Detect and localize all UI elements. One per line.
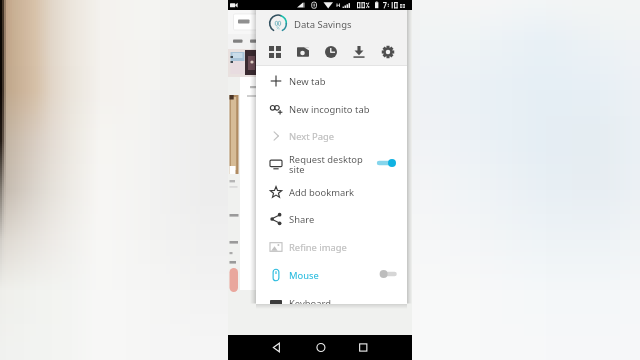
staticText: Data Savings [294, 18, 352, 31]
button[interactable]: Photos [293, 42, 313, 62]
button[interactable]: Next Page [256, 122, 407, 150]
button[interactable]: Apps [265, 42, 285, 62]
button[interactable]: Data Savings [256, 10, 407, 38]
button[interactable]: Settings [378, 42, 398, 62]
button[interactable]: Keyboard [256, 289, 407, 304]
button[interactable]: Refine image [256, 233, 407, 261]
button[interactable]: History [321, 42, 341, 62]
button[interactable]: Downloads [349, 42, 369, 62]
button[interactable]: Add bookmark [256, 178, 407, 206]
button[interactable]: New tab [256, 67, 407, 95]
staticText: Mouse [289, 269, 319, 282]
button[interactable]: New incognito tab [256, 95, 407, 123]
staticText: Next Page [289, 130, 335, 143]
button[interactable]: Mouse [256, 261, 407, 289]
staticText: Add bookmark [289, 186, 355, 199]
staticText: Request desktop site [289, 153, 365, 176]
staticText: New incognito tab [289, 103, 370, 116]
staticText: New tab [289, 75, 326, 88]
staticText: Share [289, 213, 315, 226]
staticText: Keyboard [289, 297, 331, 304]
staticText: Refine image [289, 241, 347, 254]
button[interactable]: Request desktop site [256, 150, 407, 178]
button[interactable]: Share [256, 205, 407, 233]
